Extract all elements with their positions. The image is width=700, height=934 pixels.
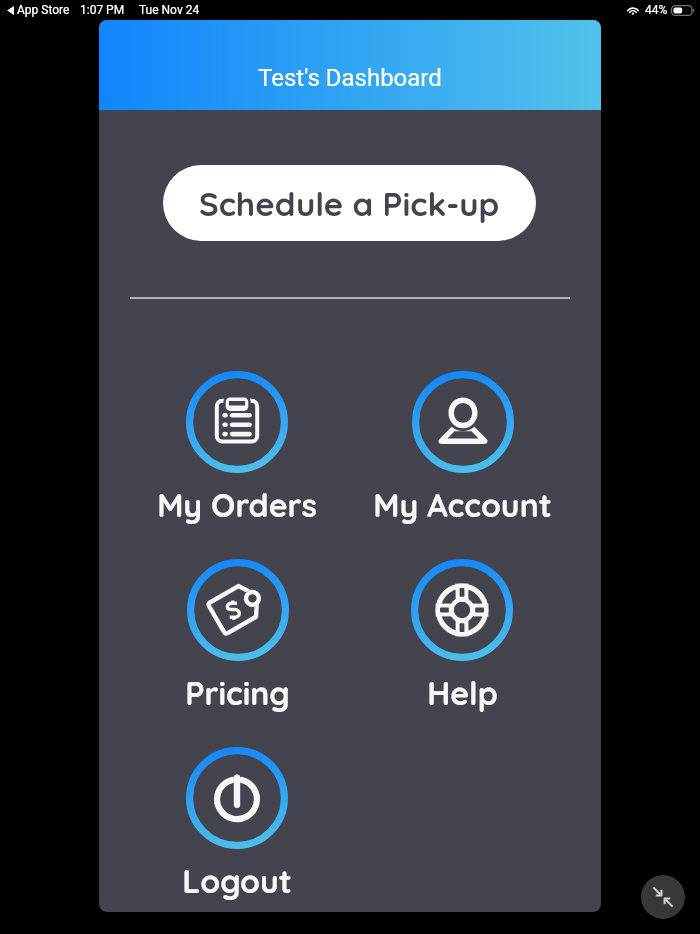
staticText: Schedule a Pick-up <box>199 183 500 224</box>
staticText: Logout <box>182 861 292 901</box>
staticText: App Store <box>17 3 70 17</box>
button[interactable]: My Account <box>350 371 574 526</box>
staticText: Test's Dashboard <box>258 64 442 92</box>
button[interactable]: Logout <box>125 747 349 902</box>
staticText: My Orders <box>157 485 317 525</box>
staticText: 44% <box>645 3 668 17</box>
button[interactable]: Help <box>350 559 574 714</box>
staticText: 1:07 PM <box>80 3 125 17</box>
button[interactable]: Pricing <box>125 559 349 714</box>
staticText: My Account <box>373 485 552 525</box>
staticText: Tue Nov 24 <box>139 3 200 17</box>
staticText: Help <box>427 673 498 713</box>
button[interactable]: Resize window <box>641 875 685 919</box>
button[interactable]: My Orders <box>125 371 349 526</box>
button[interactable]: Schedule a Pick-up <box>163 165 536 241</box>
staticText: Pricing <box>185 673 290 713</box>
